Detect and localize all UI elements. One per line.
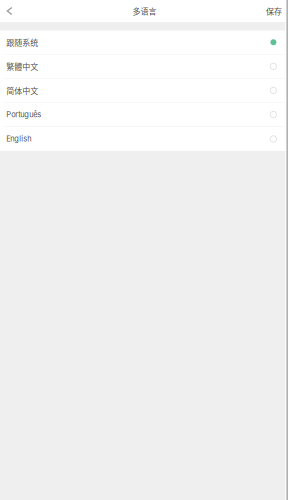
button[interactable]: English [0,127,288,151]
staticText: 保存 [266,5,282,17]
staticText: Português [6,110,41,119]
button[interactable]: 保存 [266,0,288,22]
button[interactable]: Português [0,103,288,127]
staticText: 跟随系统 [6,36,38,48]
button[interactable]: Back [0,0,23,22]
button[interactable]: 简体中文 [0,79,288,103]
staticText: 多语言 [132,5,156,17]
button[interactable]: 繁體中文 [0,55,288,79]
staticText: 简体中文 [6,85,38,96]
staticText: 繁體中文 [6,61,38,72]
button[interactable]: 跟随系统 [0,30,288,55]
staticText: English [6,134,31,143]
